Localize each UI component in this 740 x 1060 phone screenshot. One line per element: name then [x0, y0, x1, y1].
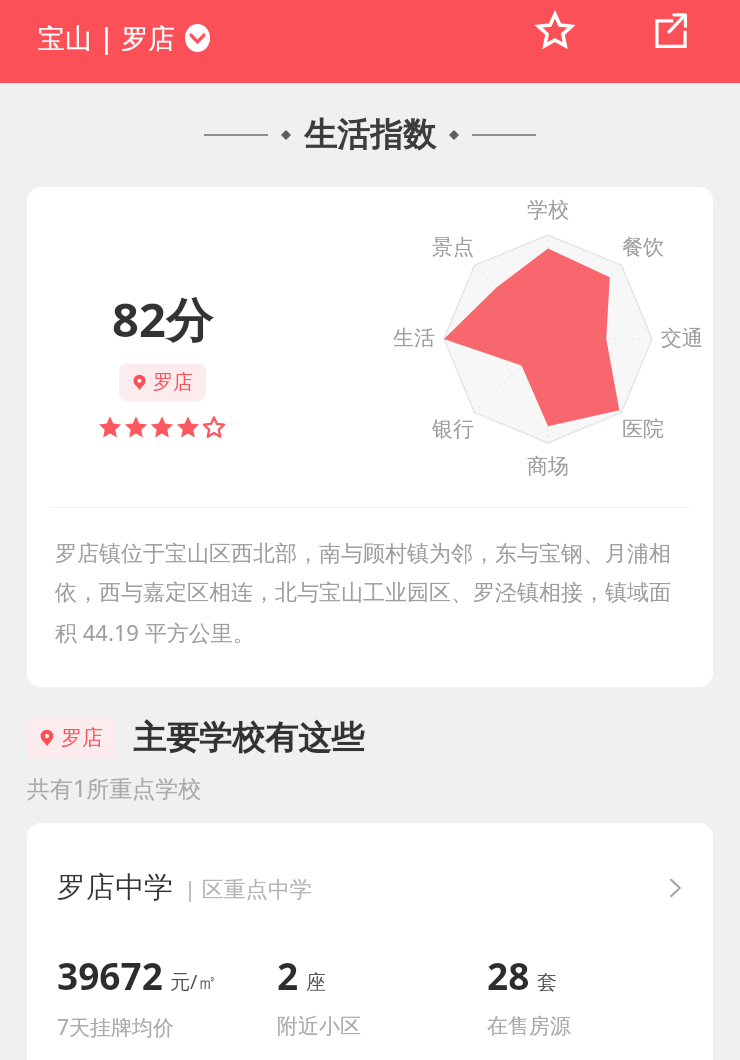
- button[interactable]: 分享: [637, 0, 705, 64]
- staticText: 28: [487, 950, 530, 1000]
- staticText: 商场: [524, 453, 572, 479]
- button[interactable]: 宝山 | 罗店: [38, 19, 210, 56]
- staticText: 银行: [429, 416, 477, 442]
- staticText: | 区重点中学: [184, 873, 312, 903]
- staticText: 82分: [112, 287, 213, 351]
- staticText: 2: [277, 950, 299, 1000]
- staticText: 在售房源: [487, 1013, 571, 1039]
- staticText: 座: [306, 970, 326, 995]
- staticText: 罗店: [61, 725, 103, 751]
- staticText: 附近小区: [277, 1013, 361, 1039]
- button[interactable]: 罗店中学: [27, 823, 713, 1060]
- staticText: 套: [537, 970, 557, 995]
- staticText: 宝山 | 罗店: [38, 19, 175, 56]
- button[interactable]: 收藏: [521, 0, 589, 64]
- staticText: 景点: [429, 234, 477, 260]
- staticText: 罗店中学: [57, 869, 173, 906]
- staticText: 罗店: [153, 370, 193, 395]
- staticText: 学校: [524, 197, 572, 223]
- button[interactable]: 罗店: [132, 370, 193, 395]
- staticText: 主要学校有这些: [133, 717, 364, 759]
- staticText: 罗店镇位于宝山区西北部，南与顾村镇为邻，东与宝钢、月浦相依，西与嘉定区相连，北与…: [55, 540, 691, 647]
- staticText: 医院: [619, 416, 667, 442]
- staticText: 元/㎡: [170, 968, 218, 995]
- staticText: 生活: [390, 325, 438, 351]
- staticText: 生活指数: [304, 114, 436, 156]
- staticText: 共有1所重点学校: [27, 772, 202, 803]
- staticText: 交通: [658, 325, 706, 351]
- staticText: 餐饮: [619, 234, 667, 260]
- staticText: 7天挂牌均价: [57, 1013, 175, 1042]
- button[interactable]: 罗店: [39, 725, 103, 751]
- staticText: 39672: [57, 950, 163, 1000]
